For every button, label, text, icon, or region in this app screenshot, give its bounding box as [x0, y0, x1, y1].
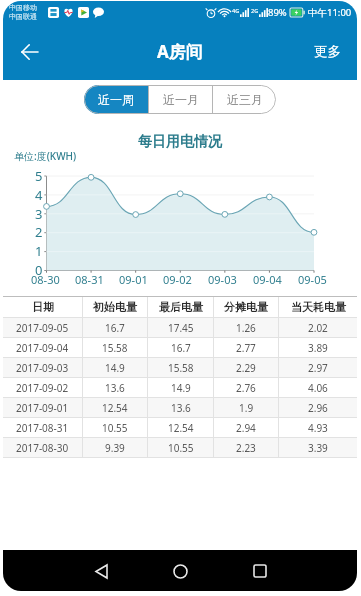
staticText: 09-05 [298, 272, 327, 287]
staticText: 1.26 [236, 321, 256, 335]
staticText: 2.76 [236, 381, 256, 395]
staticText: 1 [35, 242, 43, 260]
staticText: 09-03 [208, 272, 237, 287]
staticText: 最后电量 [159, 300, 203, 314]
staticText: 4G [232, 7, 240, 14]
button[interactable]: 近一月 [149, 85, 212, 114]
staticText: 12.54 [168, 421, 194, 435]
staticText: 当天耗电量 [291, 300, 346, 314]
staticText: 单位:度(KWH) [14, 149, 77, 163]
staticText: 15.58 [102, 341, 128, 355]
staticText: 09-02 [163, 272, 192, 287]
staticText: 13.6 [171, 401, 191, 415]
staticText: 2.96 [308, 401, 328, 415]
staticText: 2017-09-02 [16, 381, 69, 395]
staticText: 10.55 [168, 441, 194, 455]
staticText: 1.9 [239, 401, 254, 415]
staticText: 2.77 [236, 341, 256, 355]
button[interactable]: 近三月 [213, 85, 276, 114]
staticText: 2.97 [308, 361, 328, 375]
staticText: 2017-08-31 [16, 421, 69, 435]
staticText: 2.94 [236, 421, 256, 435]
staticText: 13.6 [105, 381, 125, 395]
staticText: 3 [35, 205, 43, 223]
staticText: 0 [35, 261, 43, 279]
staticText: 3.89 [308, 341, 328, 355]
staticText: 12.54 [102, 401, 128, 415]
staticText: 9.39 [105, 441, 125, 455]
staticText: 日期 [32, 300, 54, 314]
button[interactable]: 更多 [298, 31, 357, 72]
staticText: 分摊电量 [224, 300, 268, 314]
staticText: 17.45 [168, 321, 194, 335]
staticText: 2017-09-04 [16, 341, 69, 355]
button[interactable]: 近一周 [84, 85, 148, 114]
staticText: 5 [35, 167, 43, 185]
staticText: 4.06 [308, 381, 328, 395]
staticText: 2017-09-05 [16, 321, 69, 335]
button[interactable]: Recents [241, 552, 279, 590]
staticText: 16.7 [171, 341, 191, 355]
staticText: 近一周 [98, 92, 134, 107]
staticText: 2017-09-03 [16, 361, 69, 375]
staticText: 2G [251, 7, 259, 14]
staticText: 09-04 [253, 272, 282, 287]
staticText: 16.7 [105, 321, 125, 335]
staticText: 初始电量 [93, 300, 137, 314]
staticText: 09-01 [119, 272, 148, 287]
staticText: 中国移动 [9, 3, 37, 12]
staticText: 08-31 [75, 272, 104, 287]
staticText: 4 [35, 186, 43, 204]
staticText: 14.9 [171, 381, 191, 395]
button[interactable]: Back [11, 33, 49, 71]
staticText: 2017-08-30 [16, 441, 69, 455]
staticText: 15.58 [168, 361, 194, 375]
staticText: 近三月 [227, 92, 263, 107]
staticText: 每日用电情况 [138, 133, 222, 151]
staticText: 2.29 [236, 361, 256, 375]
button[interactable]: Back [82, 552, 120, 590]
staticText: 2.02 [308, 321, 328, 335]
staticText: A房间 [157, 40, 203, 63]
staticText: 更多 [314, 43, 341, 60]
staticText: 2017-09-01 [16, 401, 69, 415]
staticText: 3.39 [308, 441, 328, 455]
staticText: 近一月 [163, 92, 199, 107]
staticText: 14.9 [105, 361, 125, 375]
staticText: 2 [35, 223, 43, 241]
staticText: 89% [268, 6, 287, 19]
staticText: 10.55 [102, 421, 128, 435]
button[interactable]: Home [161, 552, 199, 590]
staticText: 中国联通 [9, 12, 37, 21]
staticText: 4.93 [308, 421, 328, 435]
staticText: 2.23 [236, 441, 256, 455]
staticText: 08-30 [31, 272, 60, 287]
staticText: 中午11:00 [308, 6, 352, 19]
